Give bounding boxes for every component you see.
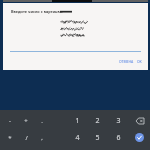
staticText: ,	[41, 134, 43, 142]
staticText: .	[41, 117, 43, 125]
button[interactable]: ОК	[136, 57, 143, 65]
button[interactable]: ОТМЕНА	[118, 57, 135, 65]
staticText: *	[8, 134, 12, 142]
button[interactable]: Enter	[129, 129, 150, 146]
staticText: 2	[95, 116, 100, 126]
button[interactable]: 4	[67, 129, 87, 146]
staticText: -	[9, 117, 11, 125]
button[interactable]: 1	[67, 112, 87, 129]
button[interactable]: 5	[87, 129, 108, 146]
button[interactable]: 2	[87, 112, 108, 129]
staticText: 1	[75, 116, 80, 126]
staticText: 3	[116, 116, 121, 126]
staticText: Введите число с картинки	[11, 9, 63, 14]
button[interactable]: +	[18, 112, 34, 129]
button[interactable]: 6	[108, 129, 129, 146]
staticText: ОТМЕНА	[119, 59, 134, 64]
button[interactable]: -	[2, 112, 18, 129]
button[interactable]: Backspace	[129, 112, 150, 129]
button[interactable]: 3	[108, 112, 129, 129]
button[interactable]: ,	[34, 129, 50, 146]
staticText: 4	[75, 133, 80, 143]
staticText: 6	[116, 133, 121, 143]
button[interactable]: /	[18, 129, 34, 146]
staticText: /	[25, 134, 28, 142]
staticText: 5	[95, 133, 100, 143]
button[interactable]: *	[2, 129, 18, 146]
staticText: ОК	[137, 59, 142, 64]
button[interactable]: .	[34, 112, 50, 129]
staticText: +	[24, 117, 28, 125]
